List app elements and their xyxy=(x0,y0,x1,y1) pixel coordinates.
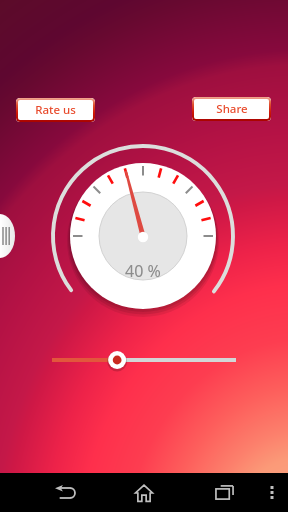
button[interactable]: More options xyxy=(256,473,288,512)
staticText: Share xyxy=(216,101,248,117)
staticText: 40 % xyxy=(125,260,161,282)
button[interactable]: Recent apps xyxy=(200,473,248,512)
button[interactable]: Level slider xyxy=(42,350,246,370)
button[interactable]: Share xyxy=(192,97,271,121)
button[interactable]: Rate us xyxy=(16,98,95,122)
staticText: Rate us xyxy=(35,102,76,118)
button[interactable]: Back xyxy=(40,473,88,512)
button[interactable]: Home xyxy=(120,473,168,512)
button[interactable]: Open drawer xyxy=(0,214,15,258)
